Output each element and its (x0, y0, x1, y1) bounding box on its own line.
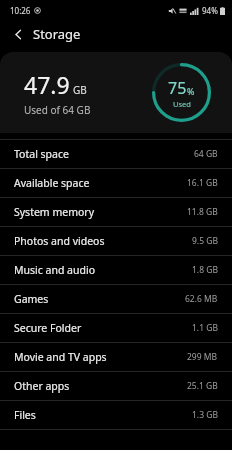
staticText: 1.3 GB (192, 409, 218, 421)
staticText: 11.8 GB (187, 206, 218, 218)
staticText: System memory (14, 205, 95, 219)
staticText: Secure Folder (14, 321, 82, 335)
staticText: 10:26 (10, 5, 31, 16)
button[interactable]: Secure Folder (0, 314, 232, 342)
staticText: GB (73, 83, 87, 97)
button[interactable]: Movie and TV apps (0, 343, 232, 371)
button[interactable]: Games (0, 285, 232, 313)
staticText: Files (14, 408, 36, 422)
staticText: Storage (33, 25, 81, 43)
button[interactable]: Available space (0, 169, 232, 197)
button[interactable]: Back (6, 22, 30, 46)
staticText: Used of 64 GB (24, 103, 91, 117)
staticText: Photos and videos (14, 234, 105, 248)
staticText: Available space (14, 176, 90, 190)
staticText: Used (173, 99, 191, 109)
button[interactable]: Photos and videos (0, 227, 232, 255)
staticText: Games (14, 292, 49, 306)
button[interactable]: 47.9 (0, 52, 232, 133)
staticText: 62.6 MB (185, 293, 218, 305)
staticText: Other apps (14, 379, 70, 393)
staticText: 1.8 GB (192, 264, 218, 276)
staticText: 1.1 GB (192, 322, 218, 334)
staticText: 47.9 (24, 69, 70, 100)
staticText: 94% (202, 5, 218, 16)
button[interactable]: Files (0, 401, 232, 429)
staticText: 25.1 GB (187, 380, 218, 392)
staticText: Music and audio (14, 263, 95, 277)
staticText: % (187, 85, 195, 97)
staticText: 299 MB (187, 351, 218, 363)
button[interactable]: Music and audio (0, 256, 232, 284)
staticText: 75 (168, 77, 187, 99)
staticText: 64 GB (194, 148, 218, 160)
staticText: Movie and TV apps (14, 350, 107, 364)
button[interactable]: System memory (0, 198, 232, 226)
button[interactable]: Other apps (0, 372, 232, 400)
staticText: Total space (14, 147, 69, 161)
button[interactable]: Total space (0, 140, 232, 168)
staticText: 16.1 GB (187, 177, 218, 189)
staticText: 9.5 GB (192, 235, 218, 247)
